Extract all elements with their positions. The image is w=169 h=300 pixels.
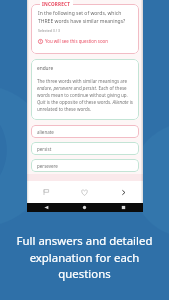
- staticText: INCORRECT: [42, 1, 71, 7]
- staticText: alienate: [37, 129, 54, 135]
- button[interactable]: Favourite: [65, 181, 104, 203]
- button[interactable]: Home: [65, 203, 104, 212]
- button[interactable]: persist: [31, 142, 139, 155]
- button[interactable]: alienate: [31, 125, 139, 138]
- staticText: Selected 3 / 3: [38, 28, 60, 33]
- button[interactable]: Next question: [104, 181, 143, 203]
- staticText: persevere: [37, 163, 58, 169]
- staticText: The three words with similar meanings ar…: [37, 78, 133, 112]
- button[interactable]: Back: [27, 203, 65, 212]
- button[interactable]: Report question: [27, 181, 65, 203]
- staticText: endure: [37, 65, 54, 72]
- staticText: In the following set of words, which THR…: [38, 10, 133, 25]
- staticText: persist: [37, 146, 52, 152]
- staticText: You will see this question soon: [45, 38, 108, 44]
- staticText: Full answers and detailed explanation fo…: [4, 233, 165, 281]
- button[interactable]: Recent apps: [104, 203, 143, 212]
- button[interactable]: persevere: [31, 159, 139, 172]
